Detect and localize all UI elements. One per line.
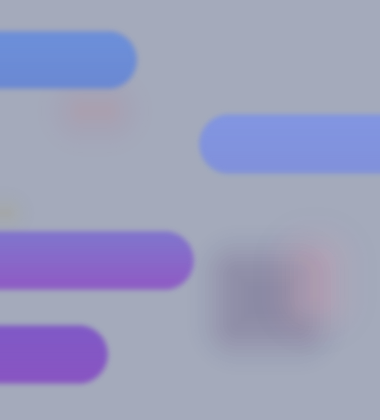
button[interactable]: Message [0, 31, 137, 89]
button[interactable]: Message [0, 325, 108, 384]
button[interactable]: Message [0, 231, 194, 290]
button[interactable]: Message [199, 114, 380, 174]
